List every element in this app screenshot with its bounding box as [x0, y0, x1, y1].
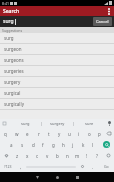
button[interactable]: j: [68, 139, 78, 150]
staticText: v: [46, 153, 49, 159]
staticText: surgery: [50, 121, 65, 126]
staticText: r: [38, 131, 40, 137]
button[interactable]: d: [28, 139, 38, 150]
button[interactable]: ?123: [0, 161, 16, 172]
staticText: surgeries: [4, 68, 24, 74]
button[interactable]: Search: [98, 139, 114, 150]
button[interactable]: a: [6, 139, 17, 150]
button[interactable]: v: [42, 150, 52, 161]
staticText: p: [98, 131, 101, 137]
button[interactable]: Shift: [0, 150, 12, 161]
staticText: surgery: [4, 79, 21, 85]
button[interactable]: Voice input: [105, 119, 114, 128]
button[interactable]: More options: [104, 6, 114, 16]
button[interactable]: surgery: [42, 119, 73, 128]
button[interactable]: surgical: [0, 88, 114, 99]
staticText: s: [21, 142, 24, 148]
staticText: z: [16, 153, 19, 159]
staticText: o: [88, 131, 91, 137]
button[interactable]: Backspace: [104, 128, 114, 139]
button[interactable]: k: [78, 139, 88, 150]
staticText: w: [15, 131, 19, 137]
button[interactable]: p: [94, 128, 104, 139]
button[interactable]: e: [22, 128, 33, 139]
staticText: u: [68, 131, 71, 137]
staticText: e: [26, 131, 29, 137]
staticText: n: [66, 153, 69, 159]
staticText: ,: [20, 164, 22, 170]
staticText: c: [36, 153, 39, 159]
staticText: !: [86, 153, 88, 159]
button[interactable]: Clipboard: [0, 119, 9, 128]
staticText: Cancel: [96, 19, 109, 24]
button[interactable]: n: [62, 150, 72, 161]
button[interactable]: b: [52, 150, 62, 161]
button[interactable]: q: [0, 128, 11, 139]
staticText: Search: [3, 8, 20, 15]
button[interactable]: Home: [53, 173, 62, 182]
staticText: g: [52, 142, 55, 148]
button[interactable]: surgeries: [0, 66, 114, 77]
button[interactable]: Recents: [73, 173, 82, 182]
button[interactable]: z: [12, 150, 22, 161]
staticText: 8:41: [2, 1, 9, 6]
button[interactable]: c: [32, 150, 42, 161]
button[interactable]: w: [11, 128, 22, 139]
button[interactable]: y: [54, 128, 64, 139]
button[interactable]: t: [44, 128, 54, 139]
staticText: k: [82, 142, 85, 148]
button[interactable]: Go: [98, 161, 114, 172]
button[interactable]: sure: [74, 119, 105, 128]
staticText: m: [75, 153, 80, 159]
button[interactable]: s: [17, 139, 28, 150]
staticText: .: [92, 164, 94, 170]
button[interactable]: x: [22, 150, 32, 161]
button[interactable]: .: [88, 161, 98, 172]
button[interactable]: l: [88, 139, 98, 150]
staticText: surg: [3, 18, 14, 25]
button[interactable]: i: [74, 128, 84, 139]
staticText: surg: [4, 35, 14, 41]
staticText: t: [48, 131, 50, 137]
staticText: surg: [21, 121, 30, 126]
button[interactable]: Settings: [76, 161, 88, 172]
button[interactable]: m: [72, 150, 82, 161]
staticText: x: [26, 153, 29, 159]
button[interactable]: surgeons: [0, 55, 114, 66]
staticText: Suggestions: [2, 28, 23, 33]
button[interactable]: h: [58, 139, 68, 150]
staticText: d: [32, 142, 35, 148]
button[interactable]: o: [84, 128, 94, 139]
staticText: y: [58, 131, 61, 137]
staticText: sure: [85, 121, 94, 126]
button[interactable]: surgery: [0, 77, 114, 88]
button[interactable]: Cancel: [93, 17, 112, 26]
staticText: surgically: [4, 101, 24, 107]
button[interactable]: Space: [26, 164, 76, 169]
staticText: surgical: [4, 90, 21, 96]
staticText: ?123: [4, 164, 12, 169]
staticText: h: [62, 142, 65, 148]
button[interactable]: g: [48, 139, 58, 150]
staticText: a: [10, 142, 13, 148]
button[interactable]: !: [82, 150, 92, 161]
button[interactable]: surg: [9, 119, 41, 128]
staticText: ?: [96, 153, 98, 159]
staticText: Go: [104, 164, 109, 169]
button[interactable]: u: [64, 128, 74, 139]
button[interactable]: surgically: [0, 99, 114, 110]
staticText: surgeons: [4, 57, 24, 63]
button[interactable]: ?: [92, 150, 102, 161]
staticText: f: [42, 142, 44, 148]
button[interactable]: r: [33, 128, 44, 139]
staticText: l: [92, 142, 94, 148]
staticText: j: [72, 142, 74, 148]
staticText: b: [56, 153, 59, 159]
button[interactable]: Emoji: [102, 150, 114, 161]
button[interactable]: Back: [33, 173, 42, 182]
button[interactable]: f: [38, 139, 48, 150]
button[interactable]: surgeon: [0, 44, 114, 55]
staticText: surgeon: [4, 46, 22, 52]
button[interactable]: surg: [0, 33, 114, 44]
button[interactable]: ,: [16, 161, 26, 172]
